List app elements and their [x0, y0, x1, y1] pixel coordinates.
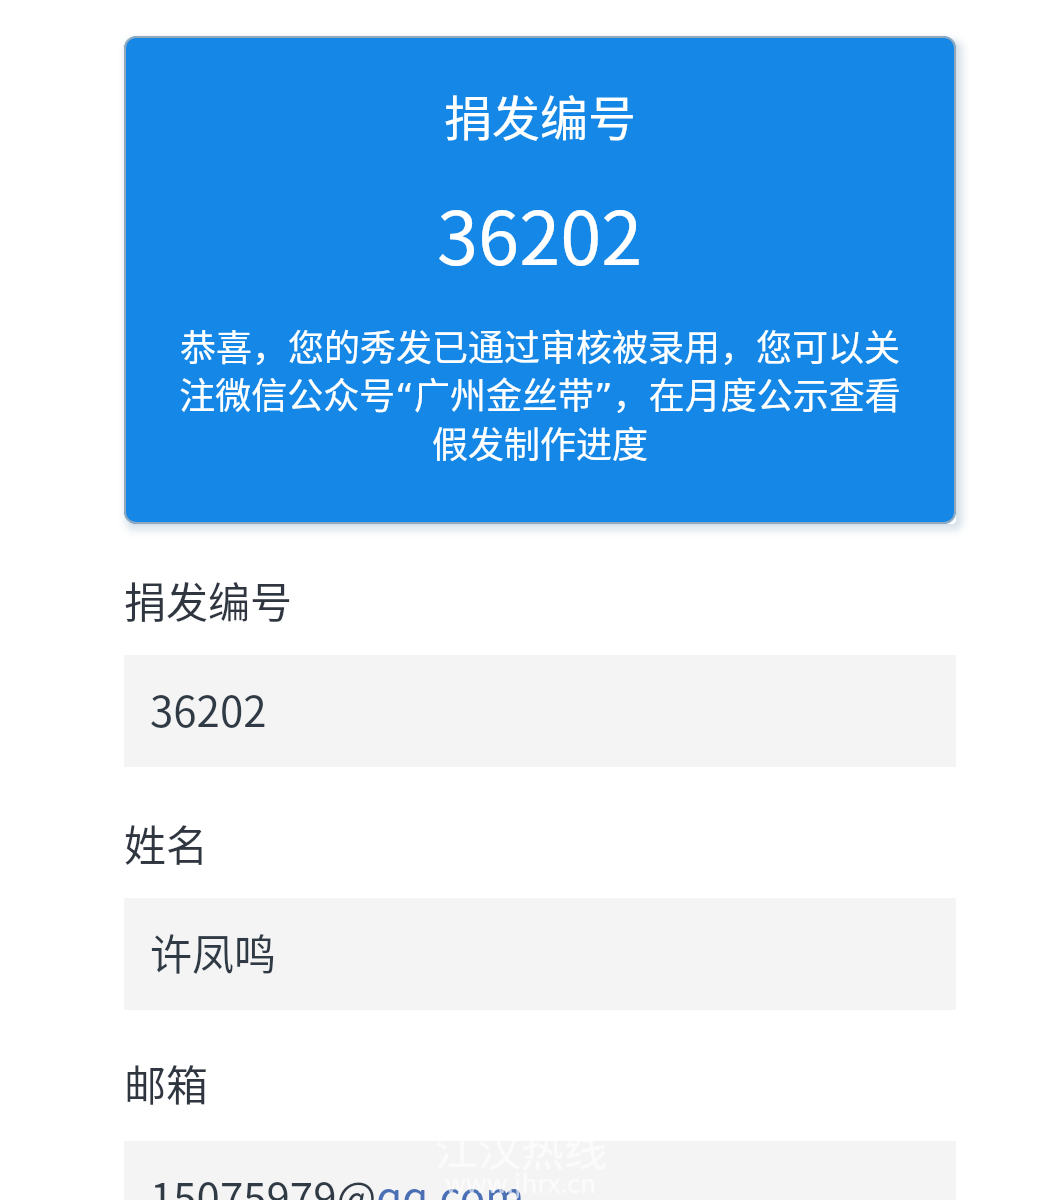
button[interactable]: 36202 [124, 655, 956, 767]
button[interactable]: 许凤鸣 [124, 898, 956, 1010]
staticText: 36202 [150, 678, 267, 739]
button[interactable]: 15075979@qq.com [124, 1141, 956, 1200]
staticText: 许凤鸣 [150, 921, 277, 982]
staticText: 恭喜，您的秀发已通过审核被录用，您可以关 注微信公众号“广州金丝带”，在月度公示… [179, 319, 901, 468]
staticText: www.jhrx.cn [445, 1163, 597, 1200]
button[interactable]: 捐发编号 36202 审核通过 [124, 36, 956, 524]
staticText: 姓名 [124, 812, 209, 873]
staticText: 江汉热线 [435, 1116, 607, 1178]
staticText: 邮箱 [124, 1052, 209, 1113]
staticText: 捐发编号 [124, 569, 293, 630]
staticText: 15075979@qq.com [150, 1164, 525, 1200]
staticText: 捐发编号 [444, 80, 637, 150]
staticText: 36202 [437, 179, 643, 286]
